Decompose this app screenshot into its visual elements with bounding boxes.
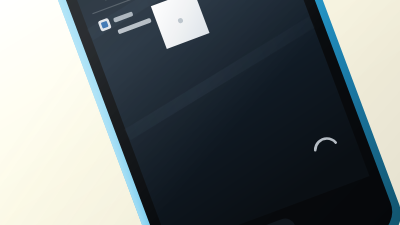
button[interactable]: Photo of a blue iPhone showing Notificat… xyxy=(0,0,400,225)
